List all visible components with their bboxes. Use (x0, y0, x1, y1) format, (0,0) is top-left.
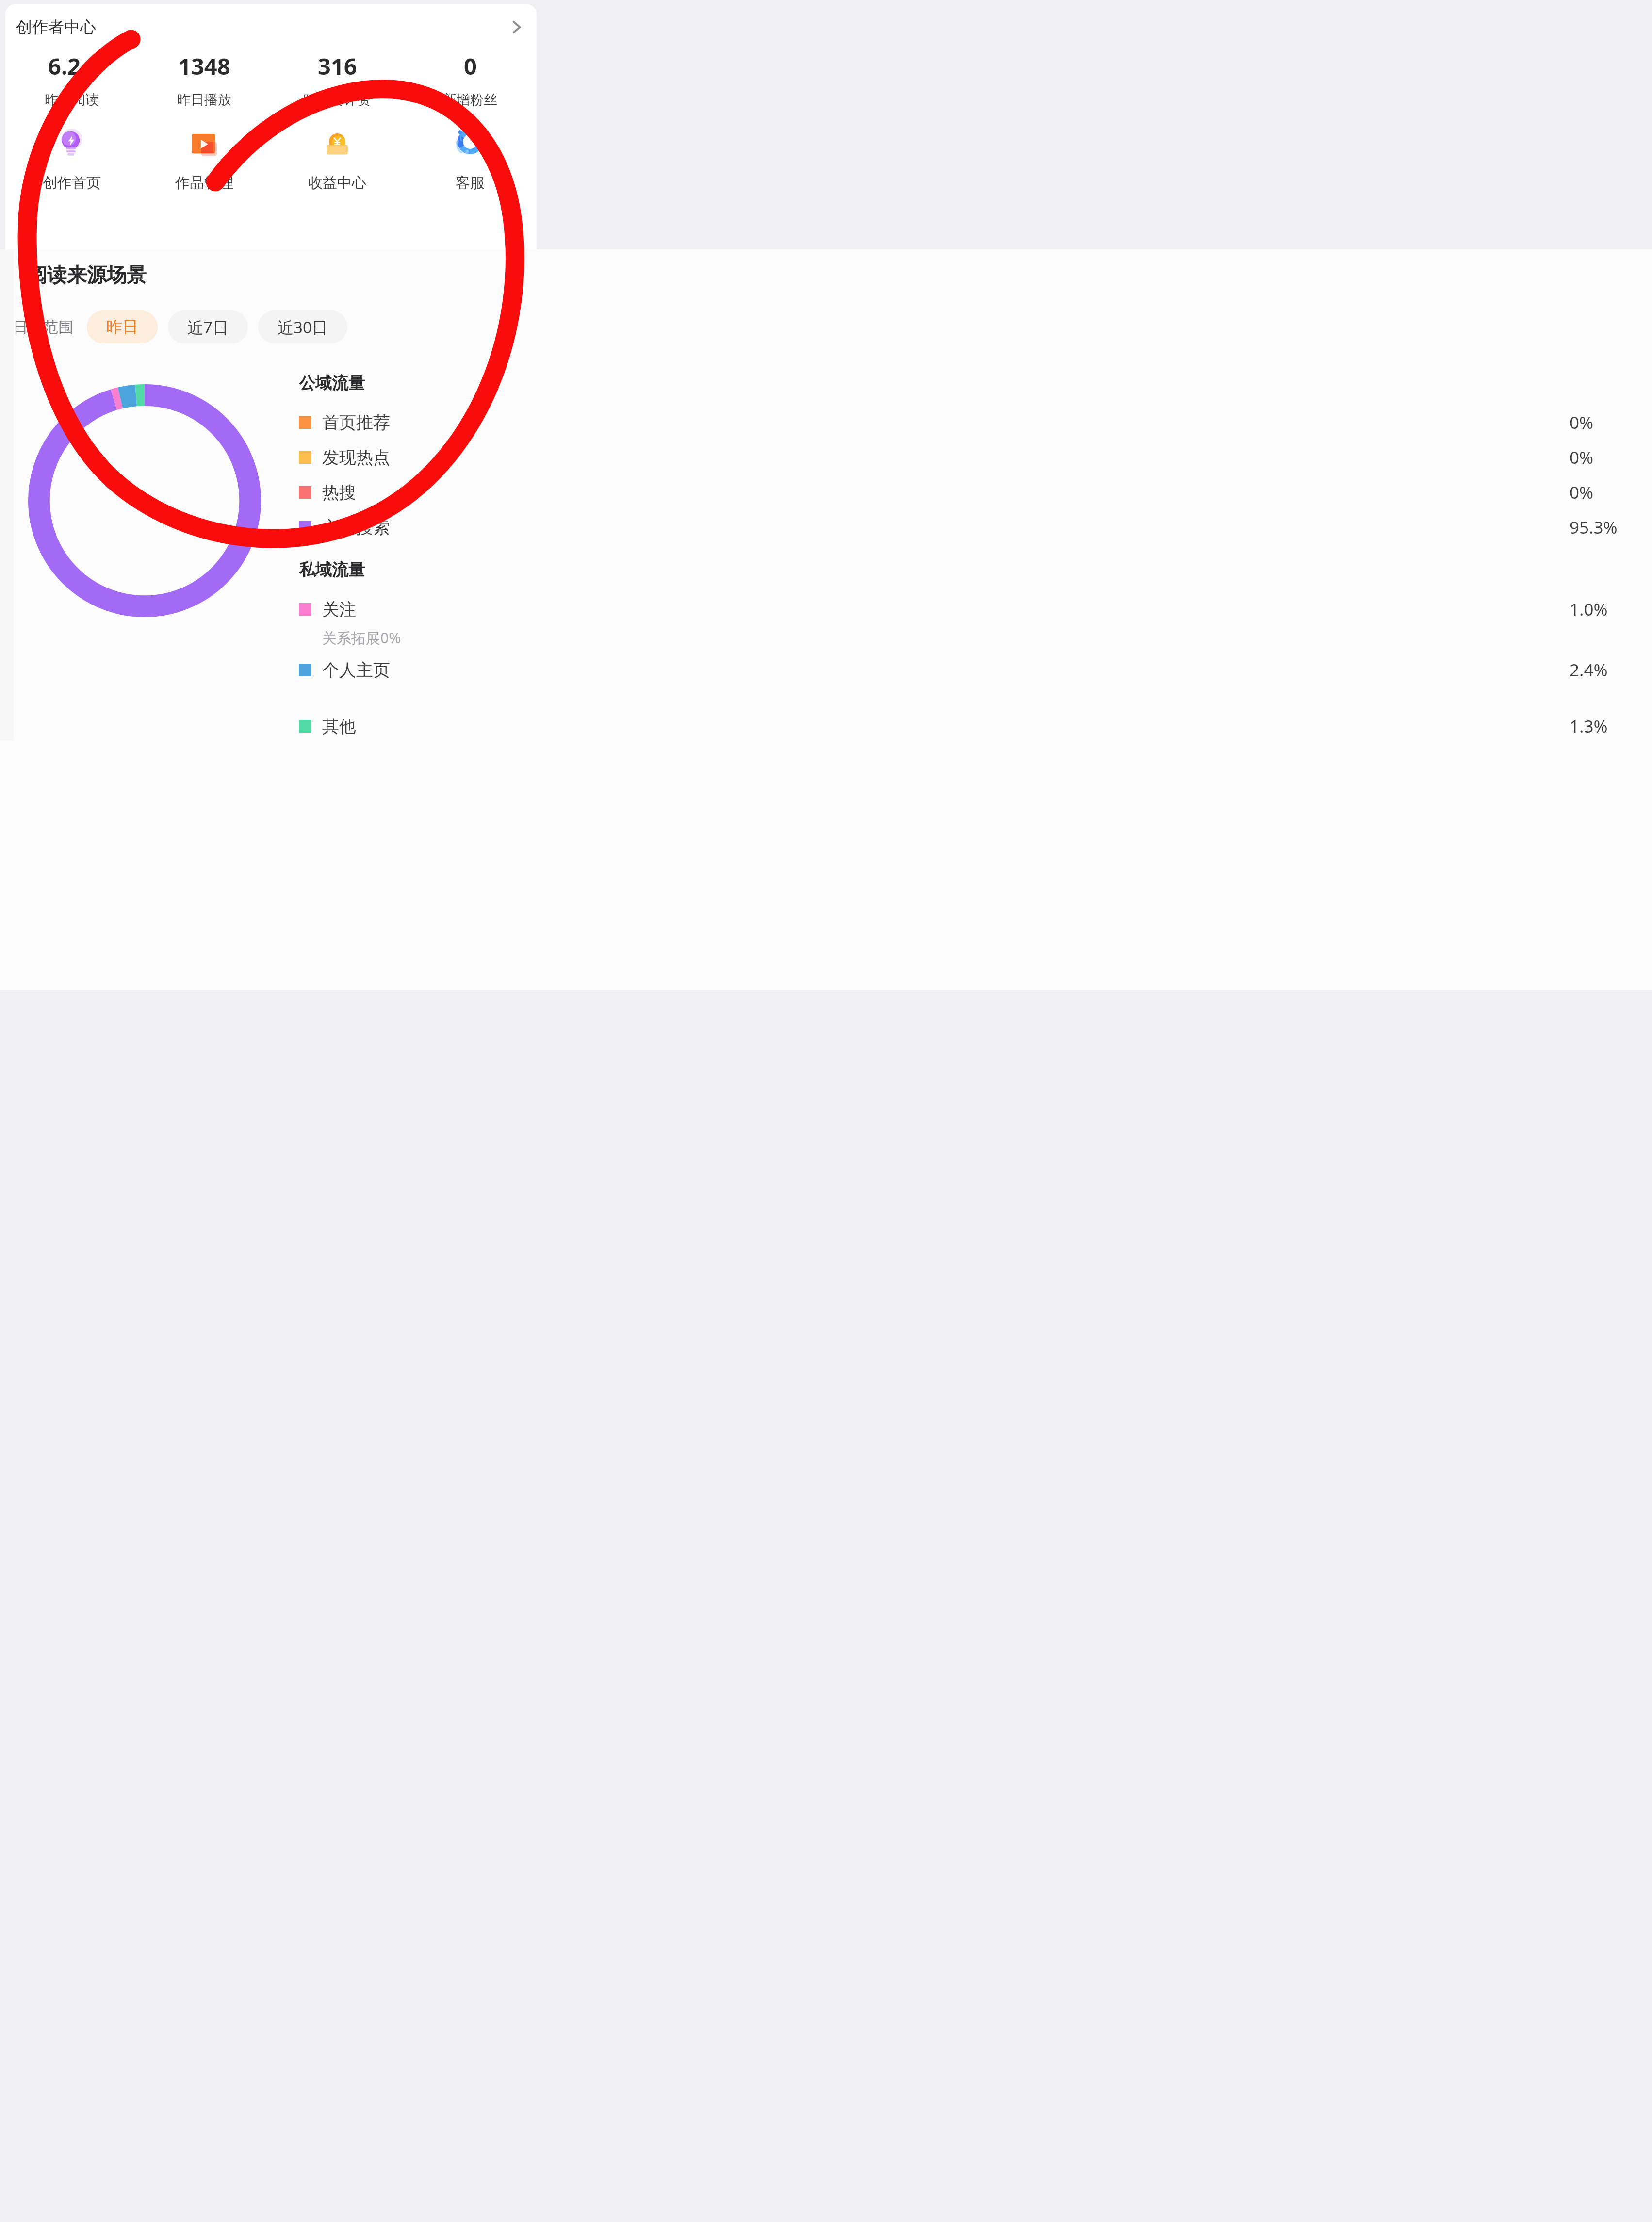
button[interactable]: 1348 (138, 50, 271, 108)
staticText: 新增粉丝 (443, 91, 497, 108)
staticText: 公域流量 (299, 373, 365, 393)
staticText: 日期范围 (13, 318, 73, 337)
staticText: 0% (1570, 446, 1652, 469)
staticText: 私域流量 (299, 559, 365, 580)
staticText: 发现热点 (322, 447, 390, 468)
button[interactable]: 近30日 (258, 310, 347, 343)
button[interactable]: 316 (271, 50, 404, 108)
button[interactable]: 客服 (404, 125, 537, 192)
staticText: 创作者中心 (16, 17, 96, 37)
staticText: 关系拓展0% (322, 628, 401, 648)
staticText: 首页推荐 (322, 412, 390, 433)
staticText: 0% (1570, 411, 1652, 434)
staticText: 近30日 (278, 316, 328, 338)
button[interactable]: 作品管理 (138, 125, 271, 192)
staticText: 1.3% (1570, 715, 1652, 738)
button[interactable]: 主动搜索 (299, 510, 1652, 545)
staticText: 主动搜索 (322, 517, 390, 538)
staticText: 万 (82, 64, 95, 80)
button[interactable]: 6.2 (5, 50, 138, 108)
staticText: 创作首页 (43, 174, 101, 192)
button[interactable]: 0 (404, 50, 537, 108)
staticText: 6.2 (48, 50, 81, 82)
button[interactable]: 个人主页 (299, 653, 1652, 687)
other: 进入创作者中心 (506, 16, 528, 38)
button[interactable]: 近7日 (168, 310, 248, 343)
button[interactable]: 收益中心 (271, 125, 404, 192)
staticText: 0 (464, 50, 477, 82)
staticText: 1348 (178, 50, 230, 82)
staticText: 阅读来源场景 (27, 263, 147, 288)
staticText: 个人主页 (322, 659, 390, 681)
button[interactable]: 创作者中心 (5, 4, 537, 50)
staticText: 316 (318, 50, 357, 82)
button[interactable]: 昨日 (87, 310, 158, 343)
staticText: 95.3% (1570, 516, 1652, 539)
button[interactable]: 首页推荐 (299, 405, 1652, 440)
staticText: 近7日 (187, 316, 229, 338)
staticText: 昨日阅读 (45, 91, 99, 108)
staticText: 关注 (322, 599, 356, 620)
staticText: 作品管理 (175, 174, 233, 192)
button[interactable]: 关注 (299, 592, 1652, 627)
staticText: 昨日转评赞 (303, 91, 371, 108)
staticText: 收益中心 (308, 174, 366, 192)
staticText: 昨日播放 (177, 91, 231, 108)
button[interactable]: 创作首页 (5, 125, 138, 192)
button[interactable]: 其他 (299, 709, 1652, 744)
button[interactable]: 发现热点 (299, 440, 1652, 475)
staticText: 1.0% (1570, 598, 1652, 621)
staticText: 客服 (456, 174, 485, 192)
staticText: 其他 (322, 716, 356, 737)
button[interactable]: 热搜 (299, 475, 1652, 510)
staticText: 热搜 (322, 482, 356, 503)
staticText: 昨日 (106, 317, 138, 337)
staticText: 2.4% (1570, 658, 1652, 682)
staticText: 0% (1570, 481, 1652, 504)
